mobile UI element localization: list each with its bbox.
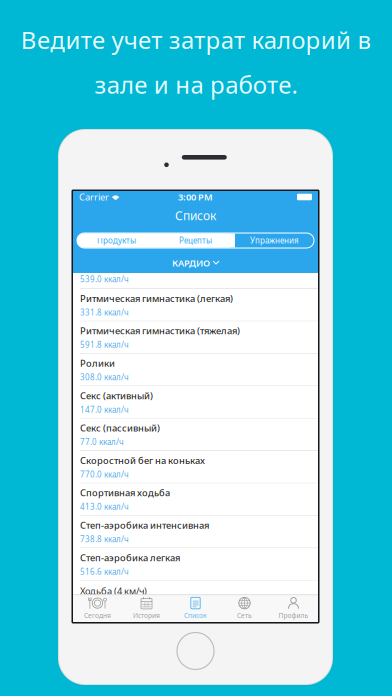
staticText: История: [133, 611, 160, 620]
button[interactable]: Ритмическая гимнастика (легкая): [73, 289, 318, 321]
button[interactable]: Профиль: [269, 595, 318, 622]
staticText: Список: [175, 207, 216, 223]
staticText: Профиль: [278, 611, 308, 620]
staticText: зале и на работе.: [94, 68, 297, 100]
staticText: Рецепты: [179, 235, 212, 246]
staticText: 770.0 ккал/ч: [80, 469, 129, 480]
staticText: Ролики: [80, 357, 115, 369]
staticText: Степ-аэробика интенсивная: [80, 519, 209, 531]
button[interactable]: КАРДИО: [73, 253, 318, 273]
staticText: 539.0 ккал/ч: [80, 274, 129, 284]
staticText: Секс (пассивный): [80, 422, 160, 434]
staticText: Упражнения: [250, 235, 299, 246]
button[interactable]: История: [122, 595, 171, 622]
staticText: Степ-аэробика легкая: [80, 551, 180, 564]
button[interactable]: Секс (пассивный): [73, 419, 318, 451]
button[interactable]: Степ-аэробика интенсивная: [73, 516, 318, 548]
staticText: 3:00 PM: [178, 191, 213, 203]
staticText: Ритмическая гимнастика (легкая): [80, 292, 233, 304]
staticText: 308.0 ккал/ч: [80, 372, 129, 382]
button[interactable]: 539.0 ккал/ч: [73, 273, 318, 289]
button[interactable]: Сеть: [220, 595, 269, 622]
staticText: Ведите учет затрат калорий в: [21, 24, 371, 55]
staticText: Сеть: [237, 611, 252, 620]
button[interactable]: Ролики: [73, 354, 318, 386]
staticText: 516.6 ккал/ч: [80, 566, 129, 577]
staticText: 77.0 ккал/ч: [80, 437, 124, 447]
staticText: Список: [184, 611, 207, 620]
button[interactable]: Спортивная ходьба: [73, 483, 318, 516]
staticText: Продукты: [97, 235, 136, 246]
button[interactable]: Секс (активный): [73, 386, 318, 419]
staticText: КАРДИО: [172, 257, 210, 269]
staticText: 591.8 ккал/ч: [80, 339, 129, 350]
staticText: 147.0 ккал/ч: [80, 404, 129, 415]
staticText: Carrier: [79, 191, 109, 203]
button[interactable]: Сегодня: [73, 595, 122, 622]
button[interactable]: Список: [171, 595, 220, 622]
staticText: Ходьба (4 км/ч): [80, 585, 147, 597]
staticText: Секс (активный): [80, 389, 153, 402]
button[interactable]: Продукты: [77, 233, 156, 248]
button[interactable]: Скоростной бег на коньках: [73, 451, 318, 483]
staticText: 331.8 ккал/ч: [80, 307, 129, 318]
staticText: 738.8 ккал/ч: [80, 534, 129, 544]
button[interactable]: Рецепты: [156, 233, 235, 248]
button[interactable]: Упражнения: [235, 233, 314, 248]
staticText: Сегодня: [84, 611, 111, 620]
staticText: Скоростной бег на коньках: [80, 454, 205, 466]
button[interactable]: Степ-аэробика легкая: [73, 548, 318, 581]
staticText: Спортивная ходьба: [80, 486, 170, 499]
button[interactable]: Ритмическая гимнастика (тяжелая): [73, 321, 318, 354]
button[interactable]: Ходьба (4 км/ч): [73, 581, 318, 595]
staticText: 413.0 ккал/ч: [80, 501, 129, 512]
staticText: Ритмическая гимнастика (тяжелая): [80, 324, 240, 337]
